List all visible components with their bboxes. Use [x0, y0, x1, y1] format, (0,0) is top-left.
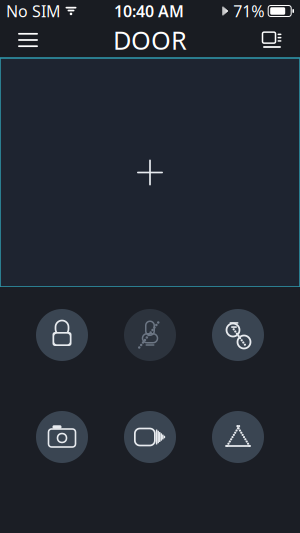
- button[interactable]: Microphone muted: [124, 309, 176, 361]
- button[interactable]: Gallery: [212, 411, 264, 463]
- staticText: 10:40 AM: [114, 0, 184, 22]
- button[interactable]: Unlock door: [36, 309, 88, 361]
- button[interactable]: Take photo: [36, 411, 88, 463]
- button[interactable]: Record video: [124, 411, 176, 463]
- staticText: DOOR: [113, 23, 187, 57]
- staticText: 71%: [233, 0, 264, 22]
- staticText: No SIM: [6, 0, 61, 22]
- button[interactable]: Switch camera: [250, 23, 294, 57]
- button[interactable]: Answer call: [212, 309, 264, 361]
- button[interactable]: Menu: [6, 23, 50, 57]
